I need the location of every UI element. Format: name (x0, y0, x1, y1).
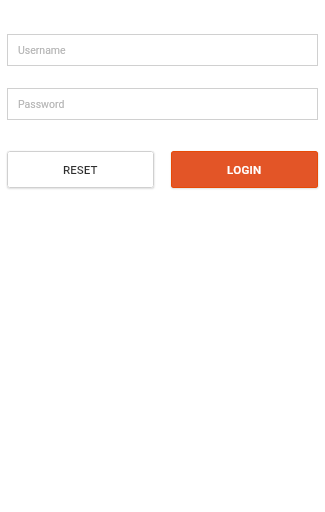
staticText: Password (18, 98, 65, 110)
staticText: LOGIN (227, 163, 262, 176)
staticText: RESET (63, 163, 98, 176)
button[interactable]: Username (7, 34, 318, 66)
button[interactable]: Password (7, 88, 318, 120)
staticText: Username (18, 44, 66, 56)
button[interactable]: RESET (7, 151, 154, 188)
button[interactable]: LOGIN (171, 151, 318, 188)
